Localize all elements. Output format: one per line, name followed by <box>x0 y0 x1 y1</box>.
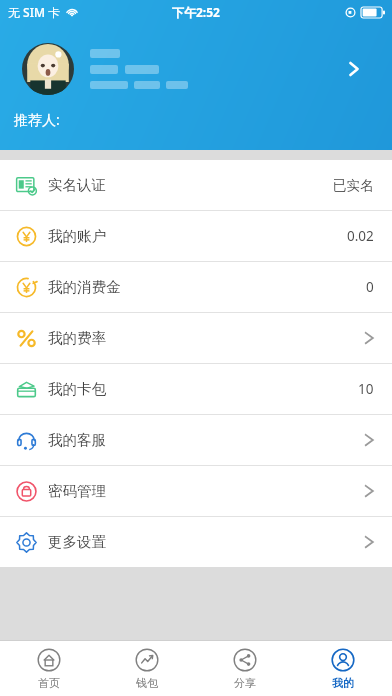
staticText: 我的客服 <box>48 431 106 449</box>
staticText: 我的费率 <box>48 329 106 347</box>
button[interactable]: 分享 <box>196 641 294 696</box>
staticText: 我的 <box>332 676 354 690</box>
button[interactable]: 我的卡包 <box>0 364 392 414</box>
staticText: 10 <box>358 380 374 398</box>
staticText: 我的消费金 <box>48 278 121 296</box>
staticText: 下午2:52 <box>172 4 220 20</box>
button[interactable]: 我的 <box>294 641 392 696</box>
staticText: 实名认证 <box>48 176 106 194</box>
staticText: 0 <box>366 278 374 296</box>
button[interactable]: 我的客服 <box>0 415 392 465</box>
button[interactable]: 我的消费金 <box>0 262 392 312</box>
staticText: 推荐人: <box>14 110 60 129</box>
staticText: 已实名 <box>333 177 374 194</box>
staticText: 钱包 <box>136 676 158 690</box>
button[interactable]: 密码管理 <box>0 466 392 516</box>
staticText: 密码管理 <box>48 482 106 500</box>
staticText: 0.02 <box>347 227 374 245</box>
button[interactable]: 钱包 <box>98 641 196 696</box>
staticText: 分享 <box>234 676 256 690</box>
button[interactable]: 更多设置 <box>0 517 392 567</box>
staticText: 首页 <box>38 676 60 690</box>
button[interactable]: 首页 <box>0 641 98 696</box>
staticText: 我的账户 <box>48 227 106 245</box>
staticText: 更多设置 <box>48 533 106 551</box>
staticText: 我的卡包 <box>48 380 106 398</box>
button[interactable]: 我的费率 <box>0 313 392 363</box>
button[interactable]: 我的账户 <box>0 211 392 261</box>
button[interactable]: 个人资料 <box>330 45 378 93</box>
button[interactable]: 实名认证 <box>0 160 392 210</box>
staticText: 无 SIM 卡 <box>8 4 61 20</box>
